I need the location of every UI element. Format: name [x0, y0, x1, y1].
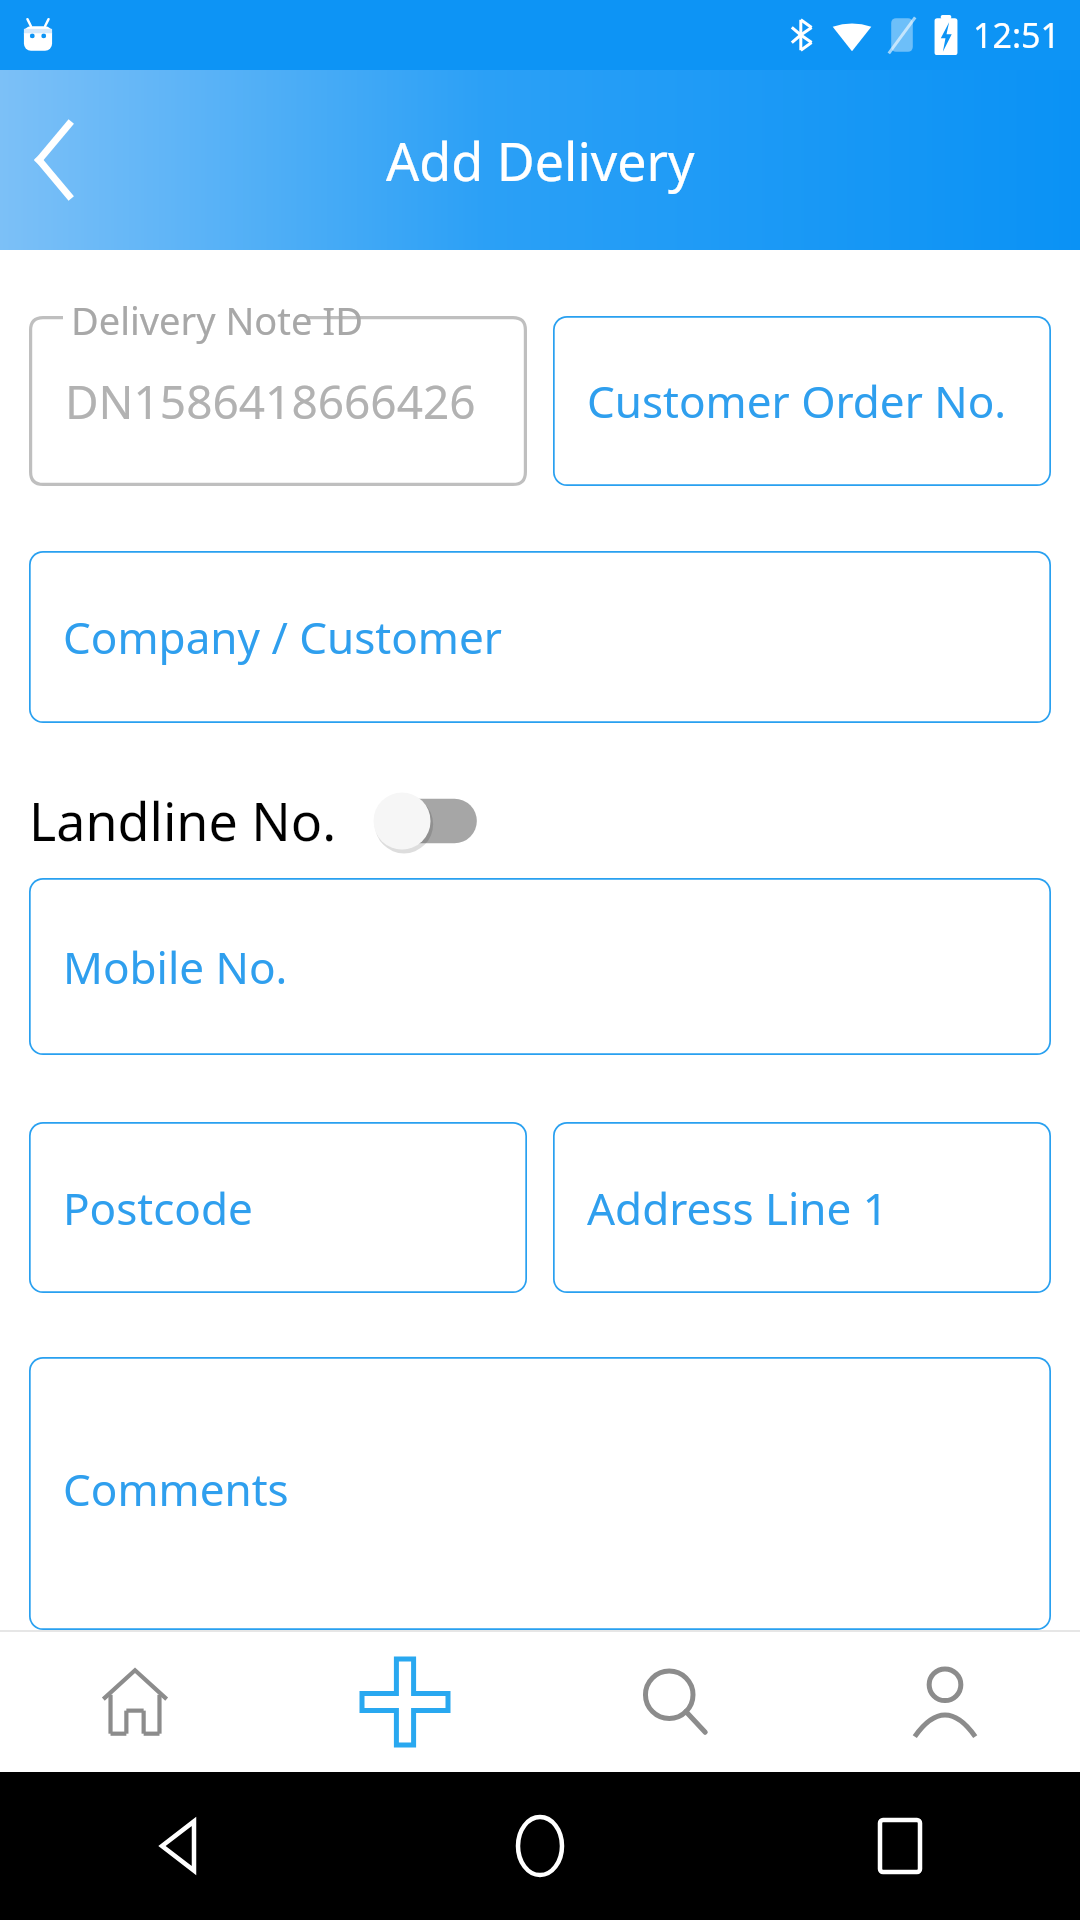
button[interactable]: Home: [0, 1632, 270, 1772]
staticText: Customer Order No.: [587, 371, 1007, 431]
staticText: Delivery Note ID: [71, 294, 363, 346]
staticText: Add Delivery: [386, 125, 695, 196]
button[interactable]: Address Line 1: [553, 1122, 1051, 1293]
staticText: Company / Customer: [63, 607, 502, 667]
button[interactable]: Back: [0, 1772, 360, 1920]
button[interactable]: Delivery Note ID: [29, 316, 527, 486]
staticText: Comments: [63, 1459, 289, 1519]
button[interactable]: Comments: [29, 1357, 1051, 1630]
button[interactable]: Mobile No.: [29, 878, 1051, 1055]
staticText: Mobile No.: [63, 937, 288, 997]
button[interactable]: Postcode: [29, 1122, 527, 1293]
button[interactable]: Back: [0, 105, 110, 215]
staticText: DN1586418666426: [65, 370, 476, 433]
button[interactable]: Profile: [810, 1632, 1080, 1772]
button[interactable]: Home: [360, 1772, 720, 1920]
staticText: Landline No.: [29, 785, 337, 856]
button[interactable]: Search: [540, 1632, 810, 1772]
button[interactable]: Landline No.: [29, 763, 1051, 878]
button[interactable]: Company / Customer: [29, 551, 1051, 723]
staticText: 12:51: [973, 12, 1060, 58]
button[interactable]: Add: [270, 1632, 540, 1772]
button[interactable]: Landline toggle: [371, 790, 479, 852]
staticText: Postcode: [63, 1178, 253, 1238]
button[interactable]: Customer Order No.: [553, 316, 1051, 486]
button[interactable]: Recents: [720, 1772, 1080, 1920]
staticText: Address Line 1: [587, 1178, 888, 1238]
